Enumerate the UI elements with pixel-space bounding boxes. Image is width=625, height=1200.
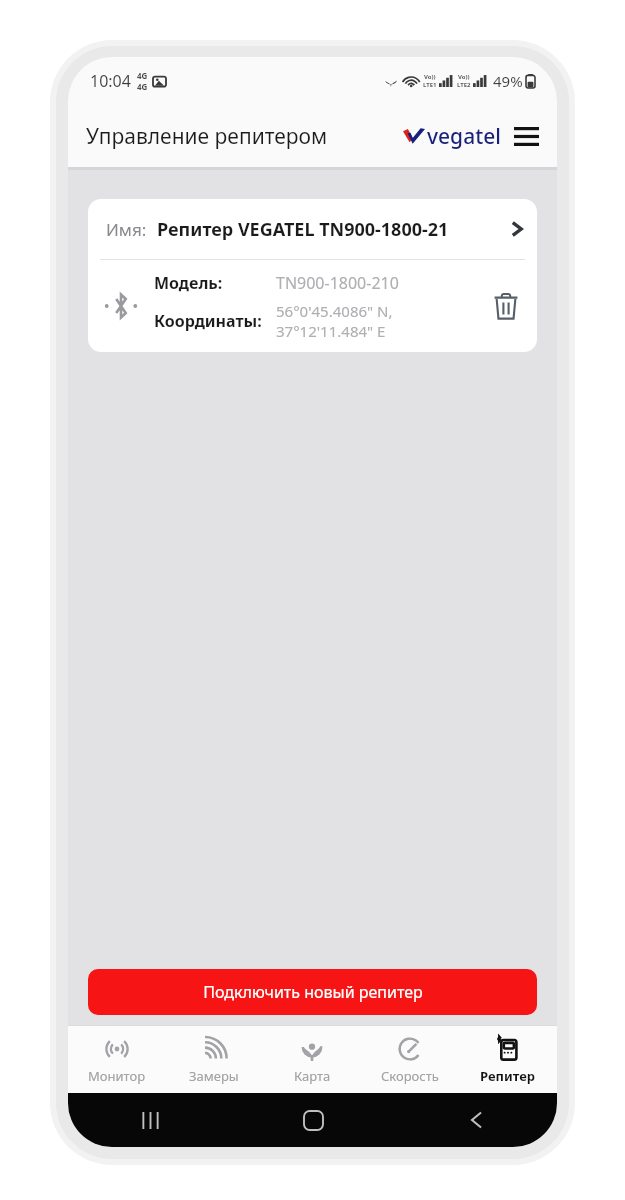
button[interactable]: Home <box>296 1103 330 1137</box>
staticText: 4G <box>137 70 148 81</box>
staticText: 10:04 <box>90 70 131 92</box>
staticText: LTE1 <box>423 81 437 89</box>
button[interactable]: Back <box>459 1103 493 1137</box>
button[interactable]: Карта <box>263 1026 361 1093</box>
staticText: 49% <box>493 71 523 91</box>
staticText: vegatel <box>427 122 501 151</box>
button[interactable]: Recents <box>133 1103 167 1137</box>
staticText: Скорость <box>381 1067 439 1085</box>
staticText: 37°12'11.484" E <box>276 321 386 341</box>
button[interactable]: Репитер <box>459 1026 557 1093</box>
staticText: Управление репитером <box>86 122 328 151</box>
staticText: Репитер VEGATEL TN900-1800-21 <box>157 217 449 242</box>
staticText: Vo)) <box>424 73 436 81</box>
staticText: LTE2 <box>457 81 471 89</box>
staticText: Карта <box>294 1067 331 1085</box>
staticText: Репитер <box>480 1067 536 1085</box>
staticText: Vo)) <box>458 73 470 81</box>
staticText: TN900-1800-210 <box>276 272 399 294</box>
staticText: Модель: <box>154 272 223 294</box>
button[interactable]: Menu <box>511 121 541 151</box>
staticText: Имя: <box>106 218 147 241</box>
button[interactable]: Монитор <box>68 1026 165 1093</box>
button[interactable]: Подключить новый репитер <box>88 969 537 1015</box>
staticText: Координаты: <box>154 310 262 332</box>
staticText: Подключить новый репитер <box>203 981 423 1003</box>
button[interactable]: Скорость <box>361 1026 459 1093</box>
staticText: Монитор <box>88 1067 146 1085</box>
button[interactable]: Имя: <box>88 199 537 259</box>
staticText: 4G <box>137 81 148 92</box>
button[interactable]: Delete repeater <box>475 260 537 352</box>
button[interactable]: Замеры <box>165 1026 263 1093</box>
staticText: Замеры <box>189 1067 239 1085</box>
button[interactable]: Модель: <box>88 260 537 352</box>
staticText: 56°0'45.4086" N, <box>276 301 393 321</box>
